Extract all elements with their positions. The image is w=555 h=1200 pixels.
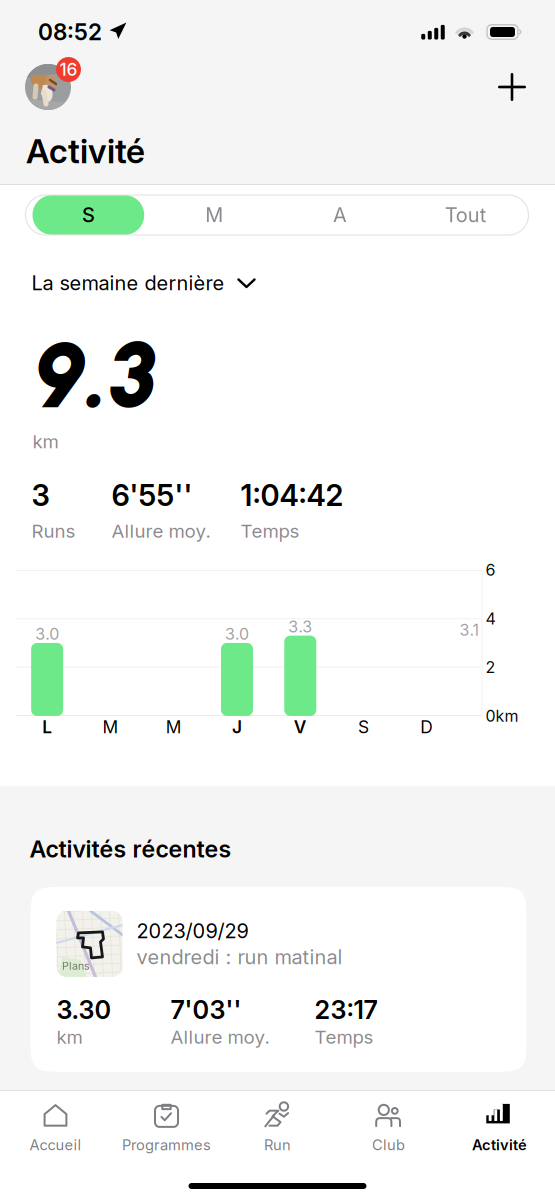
button[interactable]: Run	[222, 1098, 333, 1158]
button[interactable]: Tout	[403, 195, 529, 235]
staticText: 0km	[485, 707, 518, 725]
button[interactable]: Accueil	[0, 1098, 111, 1158]
button[interactable]: Profil	[25, 64, 71, 110]
staticText: vendredi : run matinal	[136, 946, 342, 968]
staticText: 1:04:42	[240, 479, 343, 512]
staticText: 3	[31, 479, 49, 512]
staticText: Activité	[26, 132, 145, 169]
staticText: Temps	[240, 520, 299, 541]
staticText: Plans	[62, 960, 90, 972]
staticText: Allure moy.	[170, 1026, 269, 1047]
button[interactable]: Plans	[30, 887, 526, 1072]
button[interactable]: Ajouter	[490, 65, 534, 109]
staticText: 7'03''	[170, 996, 241, 1024]
button[interactable]: M	[151, 195, 277, 235]
button[interactable]: La semaine dernière	[0, 264, 555, 302]
staticText: 6	[485, 561, 495, 579]
staticText: Activité	[472, 1137, 527, 1153]
button[interactable]: A	[277, 195, 403, 235]
staticText: 3.3	[288, 618, 312, 635]
staticText: J	[232, 717, 242, 737]
staticText: 4	[485, 610, 495, 627]
staticText: km	[32, 431, 58, 452]
staticText: 3.0	[225, 625, 249, 643]
staticText: A	[333, 204, 347, 226]
staticText: M	[205, 204, 223, 226]
staticText: 16	[59, 60, 77, 79]
staticText: 6'55''	[111, 479, 192, 512]
staticText: 3.0	[35, 625, 59, 643]
staticText: Club	[372, 1137, 405, 1153]
staticText: 3.1	[459, 621, 479, 639]
staticText: Tout	[445, 204, 487, 226]
button[interactable]: Club	[333, 1098, 444, 1158]
staticText: S	[82, 204, 95, 226]
staticText: Activités récentes	[29, 836, 231, 862]
staticText: V	[294, 717, 307, 737]
staticText: 2	[485, 658, 495, 676]
staticText: Run	[264, 1137, 291, 1153]
staticText: Accueil	[29, 1137, 81, 1153]
staticText: L	[42, 717, 52, 737]
staticText: D	[420, 717, 433, 737]
staticText: 9.3	[34, 326, 157, 423]
button[interactable]: Programmes	[111, 1098, 222, 1158]
staticText: Programmes	[122, 1137, 211, 1153]
staticText: Runs	[31, 520, 75, 541]
staticText: M	[166, 717, 182, 737]
staticText: La semaine dernière	[31, 272, 224, 294]
staticText: km	[56, 1026, 82, 1047]
button[interactable]: S	[25, 195, 151, 235]
staticText: 08:52	[38, 19, 102, 45]
staticText: 2023/09/29	[136, 920, 248, 942]
button[interactable]: Activité	[444, 1098, 555, 1158]
staticText: Temps	[314, 1026, 373, 1047]
staticText: S	[358, 717, 369, 737]
staticText: Allure moy.	[111, 520, 210, 541]
staticText: 3.30	[56, 996, 111, 1024]
staticText: 23:17	[314, 996, 377, 1024]
staticText: M	[102, 717, 118, 737]
